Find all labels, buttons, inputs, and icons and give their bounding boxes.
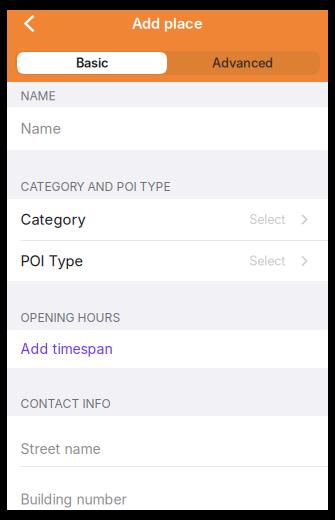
button[interactable]: POI Type xyxy=(7,241,328,281)
staticText: Name xyxy=(20,120,61,137)
staticText: Building number xyxy=(20,491,126,508)
button[interactable]: Building number xyxy=(7,467,328,511)
staticText: Add timespan xyxy=(20,340,112,357)
staticText: OPENING HOURS xyxy=(20,310,120,325)
staticText: NAME xyxy=(20,89,55,103)
staticText: CONTACT INFO xyxy=(20,396,110,411)
staticText: Add place xyxy=(132,15,203,32)
staticText: Advanced xyxy=(212,55,273,71)
staticText: POI Type xyxy=(20,252,83,270)
staticText: Select xyxy=(249,253,285,269)
staticText: Select xyxy=(249,212,285,227)
button[interactable]: Basic xyxy=(17,52,167,74)
staticText: CATEGORY AND POI TYPE xyxy=(20,179,170,194)
button[interactable]: Name xyxy=(7,107,328,150)
button[interactable]: Street name xyxy=(7,416,328,466)
button[interactable]: Add timespan xyxy=(7,330,328,368)
staticText: Basic xyxy=(76,55,108,71)
button[interactable]: Category xyxy=(7,199,328,240)
staticText: Street name xyxy=(20,440,100,457)
button[interactable]: Back xyxy=(7,10,52,37)
staticText: Category xyxy=(20,211,85,228)
button[interactable]: Advanced xyxy=(167,52,318,74)
